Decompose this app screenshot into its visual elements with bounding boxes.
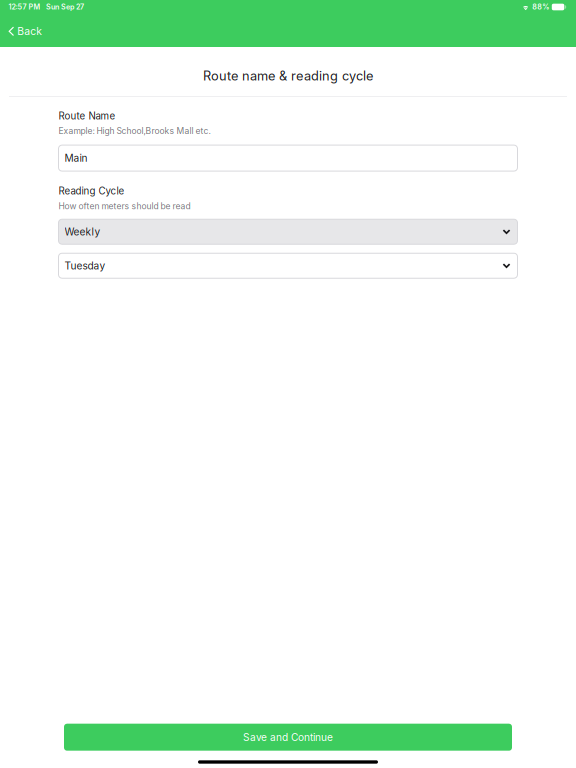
button[interactable]: Weekly	[58, 219, 517, 244]
staticText: Tuesday	[64, 260, 105, 272]
staticText: Route name & reading cycle	[203, 68, 373, 83]
staticText: 12:57 PM	[8, 3, 40, 11]
button[interactable]: Back	[0, 14, 576, 43]
staticText: Save and Continue	[243, 731, 333, 743]
staticText: Route Name	[58, 110, 115, 122]
staticText: Weekly	[64, 226, 100, 238]
staticText: 88%	[532, 3, 549, 11]
staticText: Reading Cycle	[58, 185, 124, 197]
staticText: Sun Sep 27	[46, 3, 84, 11]
staticText: Back	[17, 25, 42, 38]
staticText: Main	[64, 152, 87, 164]
button[interactable]: Save and Continue	[64, 724, 512, 751]
staticText: Example: High School,Brooks Mall etc.	[58, 126, 210, 136]
staticText: How often meters should be read	[58, 201, 190, 211]
button[interactable]: Tuesday	[58, 253, 517, 278]
